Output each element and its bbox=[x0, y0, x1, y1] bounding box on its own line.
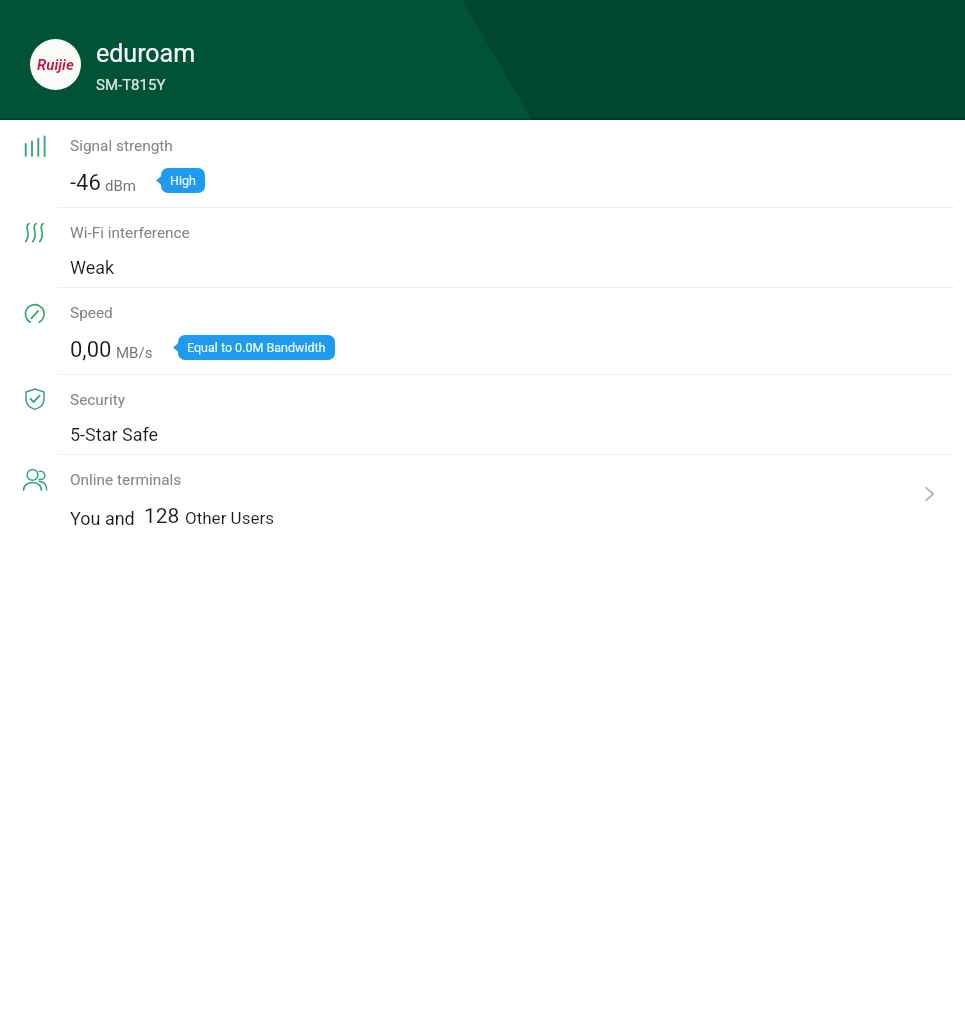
staticText: 0,00 bbox=[70, 337, 112, 363]
staticText: eduroam bbox=[96, 39, 196, 68]
staticText: -46 bbox=[70, 170, 101, 196]
staticText: SM-T815Y bbox=[96, 76, 166, 94]
staticText: dBm bbox=[105, 177, 136, 195]
button[interactable]: Wi-Fi interference bbox=[0, 207, 965, 287]
staticText: High bbox=[170, 173, 196, 188]
button[interactable]: Ruijie router logo bbox=[30, 39, 81, 90]
staticText: You and bbox=[70, 508, 135, 529]
staticText: Ruijie bbox=[37, 56, 74, 74]
button[interactable]: Security bbox=[0, 374, 965, 454]
staticText: Equal to 0.0M Bandwidth bbox=[187, 340, 326, 355]
button[interactable]: Online terminals bbox=[0, 454, 965, 534]
staticText: Signal strength bbox=[70, 137, 173, 155]
staticText: MB/s bbox=[116, 344, 153, 362]
staticText: Speed bbox=[70, 304, 113, 322]
staticText: Online terminals bbox=[70, 471, 182, 489]
button[interactable]: Signal strength bbox=[0, 120, 965, 207]
staticText: Weak bbox=[70, 257, 115, 278]
button[interactable]: Speed bbox=[0, 287, 965, 374]
staticText: Wi-Fi interference bbox=[70, 224, 190, 242]
staticText: 128 bbox=[144, 504, 180, 529]
staticText: Other Users bbox=[185, 508, 274, 528]
staticText: 5-Star Safe bbox=[70, 424, 159, 445]
button[interactable]: Online terminals details bbox=[909, 474, 949, 514]
staticText: Security bbox=[70, 391, 126, 409]
